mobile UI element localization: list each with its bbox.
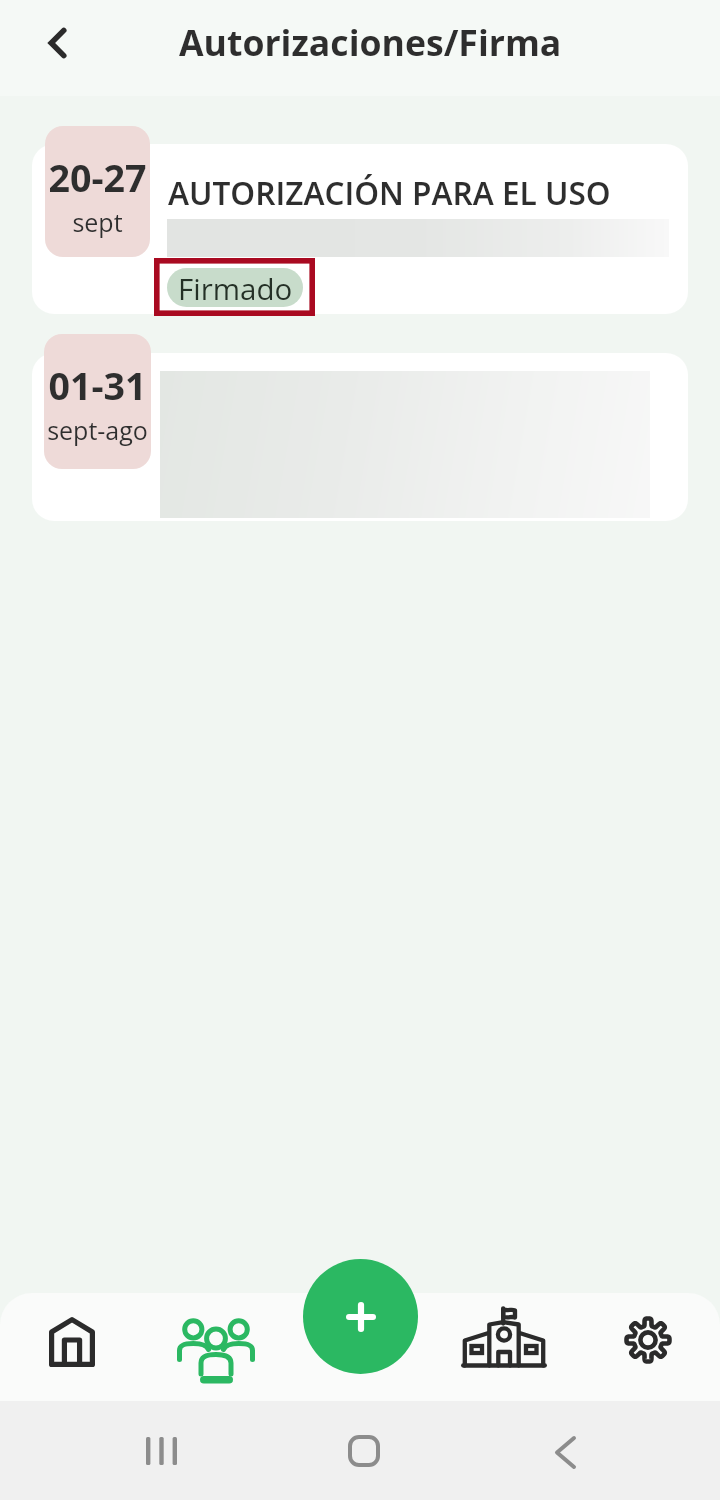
button[interactable]: School bbox=[432, 1293, 576, 1401]
button[interactable]: Groups bbox=[144, 1293, 288, 1401]
button[interactable]: 20-27 bbox=[45, 126, 150, 257]
staticText: sept-ago bbox=[47, 413, 148, 447]
button[interactable]: Add bbox=[303, 1259, 418, 1374]
staticText: Autorizaciones/Firma bbox=[179, 18, 562, 66]
staticText: Firmado bbox=[178, 268, 293, 307]
button[interactable]: Firmado bbox=[167, 268, 303, 307]
button[interactable]: 01-31 bbox=[44, 334, 151, 469]
staticText: 20-27 bbox=[48, 152, 147, 203]
staticText: 01-31 bbox=[48, 360, 147, 411]
button[interactable]: Home bbox=[324, 1424, 404, 1478]
button[interactable] bbox=[32, 353, 688, 521]
button[interactable]: Home bbox=[0, 1293, 144, 1401]
button[interactable]: Settings bbox=[576, 1293, 720, 1401]
staticText: sept bbox=[72, 205, 123, 239]
button[interactable]: Back bbox=[525, 1425, 605, 1479]
staticText: AUTORIZACIÓN PARA EL USO bbox=[168, 171, 611, 214]
button[interactable]: Back bbox=[0, 0, 108, 90]
button[interactable] bbox=[32, 144, 688, 314]
button[interactable]: Recent apps bbox=[121, 1424, 201, 1478]
